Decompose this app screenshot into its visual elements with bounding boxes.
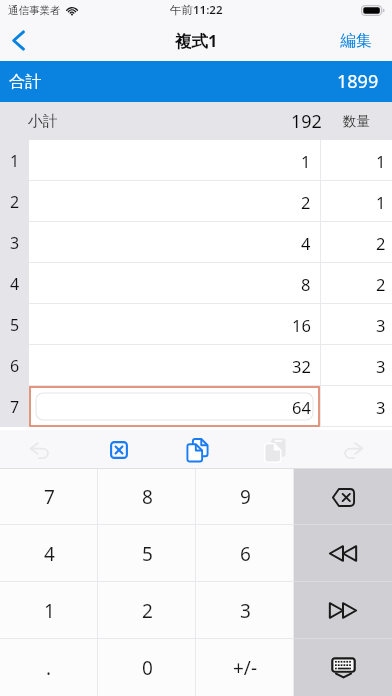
button[interactable]: 3 [320, 345, 392, 386]
staticText: 4 [301, 232, 311, 254]
button[interactable]: 16 [29, 304, 320, 345]
staticText: 8 [142, 484, 153, 510]
staticText: 6 [10, 355, 20, 377]
button[interactable]: Delete [294, 469, 392, 525]
button[interactable]: 7 [0, 469, 98, 525]
staticText: 午前11:22 [170, 2, 223, 18]
staticText: 3 [376, 355, 386, 377]
staticText: 5 [10, 314, 20, 336]
button[interactable]: Undo [0, 430, 79, 469]
staticText: 1 [376, 191, 386, 213]
button[interactable]: Next [294, 582, 392, 639]
staticText: 小計 [28, 112, 58, 131]
staticText: 9 [240, 484, 251, 510]
button[interactable]: 5 [98, 525, 196, 582]
staticText: 2 [376, 232, 386, 254]
button[interactable]: Previous [294, 525, 392, 582]
button[interactable]: 0 [98, 639, 196, 696]
staticText: 7 [44, 484, 55, 510]
button[interactable]: 8 [98, 469, 196, 525]
button[interactable]: . [0, 639, 98, 696]
staticText: 6 [240, 541, 251, 567]
staticText: 192 [291, 109, 322, 134]
staticText: 2 [376, 273, 386, 295]
staticText: 8 [301, 273, 311, 295]
button[interactable]: 9 [196, 469, 294, 525]
button[interactable]: Redo [314, 430, 392, 469]
staticText: 7 [10, 396, 20, 418]
button[interactable]: 合計 [0, 61, 392, 102]
staticText: 16 [292, 314, 311, 336]
button[interactable]: 2 [98, 582, 196, 639]
button[interactable]: 3 [320, 386, 392, 427]
staticText: 1 [301, 150, 311, 172]
staticText: 3 [240, 598, 251, 624]
staticText: 合計 [9, 72, 41, 92]
button[interactable]: 編集 [320, 20, 392, 61]
staticText: +/- [233, 655, 258, 681]
button[interactable]: Hide keyboard [294, 639, 392, 696]
staticText: 数量 [343, 113, 370, 130]
button[interactable]: 1 [320, 140, 392, 181]
button[interactable]: 64 [29, 386, 320, 427]
staticText: 2 [301, 191, 311, 213]
button[interactable]: 2 [320, 263, 392, 304]
staticText: 4 [44, 541, 55, 567]
button[interactable]: Clear [79, 430, 158, 469]
staticText: 64 [292, 396, 311, 418]
button[interactable]: 3 [320, 304, 392, 345]
staticText: 複式1 [175, 29, 218, 52]
staticText: 1 [44, 598, 55, 624]
staticText: 1 [10, 150, 20, 172]
button[interactable]: Copy [158, 430, 236, 469]
button[interactable]: 1 [0, 582, 98, 639]
button[interactable]: 1 [320, 181, 392, 222]
staticText: 5 [142, 541, 153, 567]
staticText: 2 [10, 191, 20, 213]
staticText: 3 [10, 232, 20, 254]
button[interactable]: Back [0, 20, 36, 61]
button[interactable]: 1 [29, 140, 320, 181]
button[interactable]: 6 [196, 525, 294, 582]
staticText: 1899 [337, 69, 379, 94]
staticText: 32 [292, 355, 311, 377]
button[interactable]: Paste [236, 430, 314, 469]
staticText: 1 [376, 150, 386, 172]
button[interactable]: 8 [29, 263, 320, 304]
button[interactable]: 4 [0, 525, 98, 582]
button[interactable]: 3 [196, 582, 294, 639]
staticText: 3 [376, 396, 386, 418]
button[interactable]: 2 [320, 222, 392, 263]
staticText: 3 [376, 314, 386, 336]
staticText: 2 [142, 598, 153, 624]
staticText: 4 [10, 273, 20, 295]
staticText: . [46, 655, 52, 681]
button[interactable]: +/- [196, 639, 294, 696]
staticText: 通信事業者 [8, 4, 61, 17]
staticText: 編集 [340, 31, 372, 51]
button[interactable]: 32 [29, 345, 320, 386]
staticText: 0 [142, 655, 153, 681]
button[interactable]: 2 [29, 181, 320, 222]
button[interactable]: 4 [29, 222, 320, 263]
